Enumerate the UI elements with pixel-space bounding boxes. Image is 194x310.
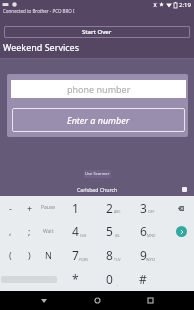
staticText: )	[28, 249, 31, 261]
button[interactable]: 3	[126, 196, 160, 219]
staticText: ,	[117, 281, 118, 286]
staticText: Enter a number	[67, 114, 130, 126]
staticText: N	[45, 249, 52, 261]
staticText: 1	[72, 200, 79, 216]
button[interactable]: +	[20, 196, 39, 219]
staticText: PQRS	[79, 257, 88, 262]
button[interactable]: Start Over	[4, 26, 190, 38]
button[interactable]: 6	[126, 219, 160, 243]
button[interactable]: 2	[92, 196, 126, 219]
staticText: 8	[106, 247, 113, 263]
button[interactable]: Pause	[39, 196, 58, 219]
button[interactable]: 1	[58, 196, 92, 219]
staticText: Connected to Brother - PCO BRO I	[3, 8, 75, 14]
button[interactable]: Backspace	[172, 199, 190, 217]
button[interactable]: Wait	[39, 219, 58, 243]
button[interactable]: ,	[0, 219, 20, 243]
staticText: 7	[72, 247, 79, 263]
staticText: ,	[9, 225, 12, 237]
staticText: 2	[106, 200, 113, 216]
staticText: WXYZ	[146, 257, 156, 262]
staticText: Weekend Services	[3, 41, 79, 53]
staticText: Start Over	[82, 28, 112, 36]
button[interactable]: Enter a number	[12, 108, 185, 132]
staticText: 3	[140, 200, 147, 216]
staticText: MNO	[147, 233, 156, 238]
staticText: +	[27, 202, 33, 214]
staticText: 5	[106, 223, 113, 239]
staticText: -	[9, 202, 12, 214]
staticText: DEF	[148, 209, 155, 214]
staticText: Carlsbad Church	[77, 186, 118, 193]
button[interactable]: (	[0, 243, 20, 267]
button[interactable]: Back	[34, 291, 53, 310]
staticText: GHI	[80, 233, 87, 238]
staticText: 6	[140, 223, 147, 239]
staticText: *	[72, 271, 79, 287]
staticText: Use Scanner	[85, 171, 110, 177]
staticText: 9	[140, 247, 147, 263]
button[interactable]: Home	[88, 291, 107, 310]
button[interactable]: ;	[20, 219, 39, 243]
button[interactable]: Use Scanner	[84, 170, 111, 178]
button[interactable]: #	[126, 267, 160, 291]
staticText: (	[9, 249, 12, 261]
staticText: #	[139, 271, 147, 287]
button[interactable]: phone number	[11, 80, 186, 98]
staticText: ABC	[114, 209, 121, 214]
staticText: Pause	[41, 204, 56, 211]
staticText: phone number	[67, 83, 131, 95]
button[interactable]: 8	[92, 243, 126, 267]
button[interactable]: 7	[58, 243, 92, 267]
button[interactable]: Recents	[141, 291, 160, 310]
button[interactable]: Go	[176, 226, 187, 237]
staticText: 0	[106, 271, 113, 287]
staticText: ;	[28, 225, 31, 237]
button[interactable]: -	[0, 196, 20, 219]
staticText: TUV	[114, 257, 121, 262]
staticText: 2:19	[179, 1, 191, 9]
button[interactable]: 0	[92, 267, 126, 291]
button[interactable]: *	[58, 267, 92, 291]
button[interactable]: )	[20, 243, 39, 267]
staticText: Wait	[43, 228, 54, 235]
button[interactable]: 5	[92, 219, 126, 243]
button[interactable]: 4	[58, 219, 92, 243]
staticText: JKL	[115, 233, 120, 238]
staticText: 4	[72, 223, 79, 239]
button[interactable]: 9	[126, 243, 160, 267]
button[interactable]: Space	[0, 267, 58, 291]
button[interactable]: N	[39, 243, 58, 267]
